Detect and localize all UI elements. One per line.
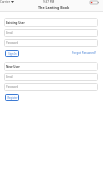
staticText: Password [6, 41, 19, 45]
staticText: Register [7, 96, 18, 100]
staticText: Sign In [8, 52, 17, 56]
button[interactable]: Register [5, 94, 19, 101]
staticText: The Lanting Book [38, 5, 70, 10]
staticText: 9:37 PM [43, 0, 55, 4]
button[interactable]: Password [4, 83, 98, 91]
staticText: Forgot Password? [72, 51, 97, 55]
button[interactable]: Forgot Password? [72, 51, 97, 55]
staticText: Password [6, 85, 19, 89]
button[interactable]: Email [4, 29, 98, 37]
button[interactable]: Password [4, 39, 98, 47]
button[interactable]: Email [4, 73, 98, 81]
staticText: New User [6, 65, 20, 69]
staticText: Email [6, 75, 13, 79]
staticText: Carrier [0, 0, 10, 4]
button[interactable]: Sign In [5, 50, 19, 57]
staticText: Existing User [6, 21, 25, 25]
staticText: Email [6, 31, 13, 35]
